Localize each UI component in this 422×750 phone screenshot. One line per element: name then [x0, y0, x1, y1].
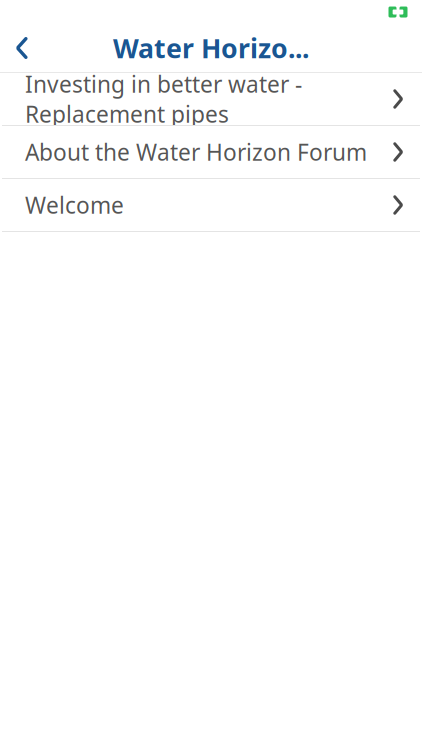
staticText: About the Water Horizon Forum [25, 137, 367, 167]
staticText: Water Horizo... [113, 30, 309, 66]
button[interactable]: About the Water Horizon Forum [0, 126, 422, 178]
staticText: Investing in better water - Replacement … [25, 69, 302, 129]
staticText: Welcome [25, 190, 124, 220]
button[interactable]: Investing in better water - Replacement … [0, 73, 422, 125]
button[interactable]: Back [0, 26, 44, 70]
button[interactable]: Welcome [0, 179, 422, 231]
